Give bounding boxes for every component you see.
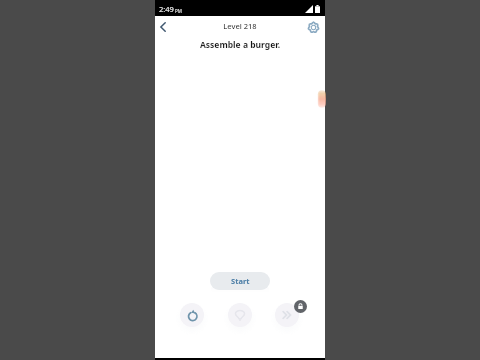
button[interactable]: Skip <box>275 303 299 327</box>
button[interactable]: Back <box>153 17 173 37</box>
staticText: PM <box>175 8 182 14</box>
button[interactable]: Locked <box>294 300 307 313</box>
staticText: 2:49 <box>159 4 174 14</box>
button[interactable]: Hint <box>228 303 252 327</box>
button[interactable]: Start <box>210 272 270 290</box>
staticText: Start <box>231 276 250 286</box>
staticText: Level 218 <box>155 21 325 31</box>
button[interactable]: Settings <box>303 17 323 37</box>
staticText: Assemble a burger. <box>155 39 325 51</box>
button[interactable]: Restart <box>180 303 204 327</box>
